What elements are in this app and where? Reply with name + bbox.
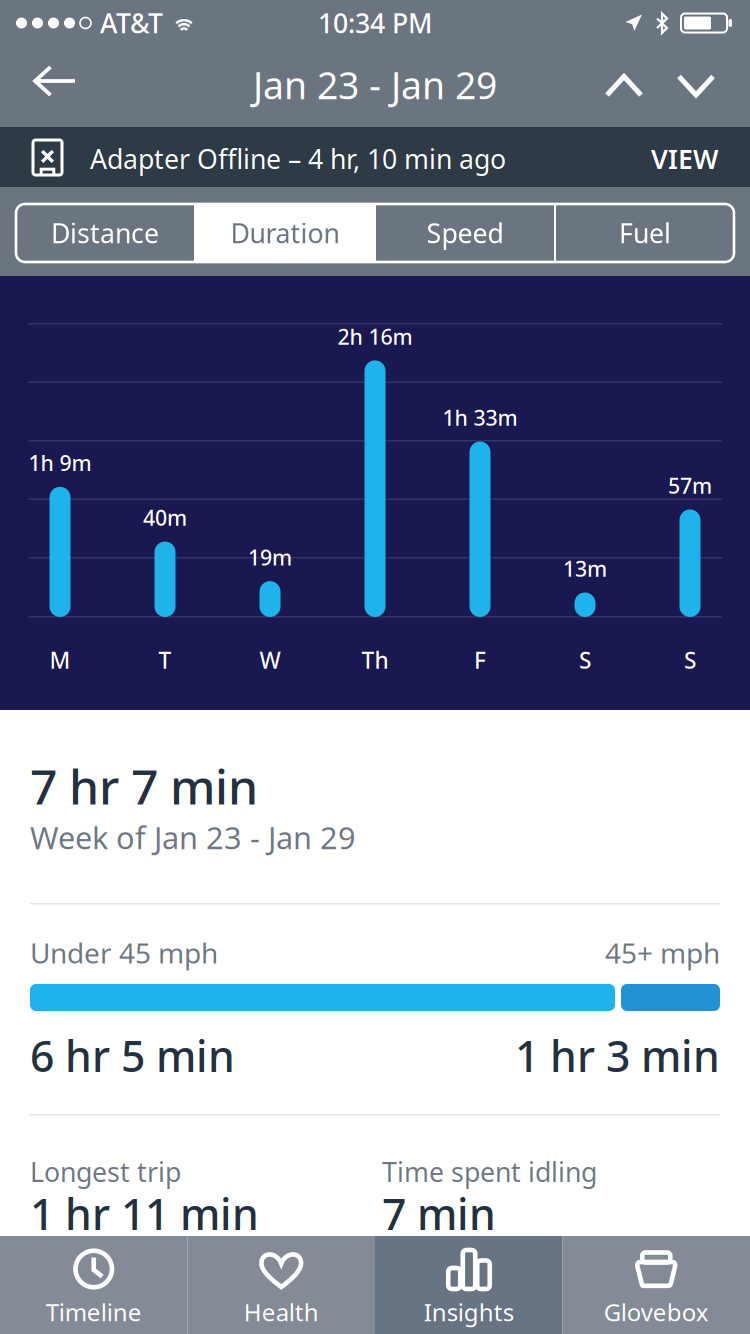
staticText: T xyxy=(158,645,171,675)
staticText: S xyxy=(579,645,591,675)
staticText: 45+ mph xyxy=(605,934,720,971)
button[interactable]: Speed xyxy=(376,204,554,262)
staticText: 7 hr 7 min xyxy=(30,754,258,818)
staticText: Jan 23 - Jan 29 xyxy=(253,60,497,110)
button[interactable]: Duration xyxy=(196,204,374,262)
button[interactable]: Next week xyxy=(663,55,729,117)
staticText: 13m xyxy=(563,554,607,583)
staticText: Speed xyxy=(426,215,503,251)
staticText: Glovebox xyxy=(604,1296,709,1328)
button[interactable]: Health xyxy=(187,1236,375,1334)
staticText: 1h 9m xyxy=(28,449,91,477)
staticText: 10:34 PM xyxy=(318,5,432,41)
staticText: 1h 33m xyxy=(442,403,517,432)
staticText: Week of Jan 23 - Jan 29 xyxy=(30,817,356,858)
staticText: Time spent idling xyxy=(382,1154,597,1189)
staticText: W xyxy=(259,645,280,675)
button[interactable]: Back xyxy=(17,50,93,112)
staticText: Th xyxy=(361,645,388,675)
button[interactable]: Timeline xyxy=(0,1236,187,1334)
staticText: F xyxy=(474,645,486,675)
staticText: 57m xyxy=(668,471,712,500)
staticText: AT&T xyxy=(100,5,163,41)
button[interactable]: Adapter Offline – 4 hr, 10 min ago xyxy=(0,127,750,187)
staticText: Distance xyxy=(51,215,159,251)
button[interactable]: Fuel xyxy=(556,204,734,262)
staticText: 1 hr 3 min xyxy=(515,1027,720,1084)
staticText: M xyxy=(49,645,70,675)
staticText: Timeline xyxy=(46,1296,142,1328)
staticText: Longest trip xyxy=(30,1154,181,1189)
staticText: Health xyxy=(244,1296,319,1328)
staticText: 7 min xyxy=(382,1185,496,1242)
button[interactable]: Glovebox xyxy=(562,1236,750,1334)
staticText: Fuel xyxy=(619,215,671,251)
staticText: Insights xyxy=(424,1296,514,1328)
staticText: Under 45 mph xyxy=(30,934,218,971)
staticText: 2h 16m xyxy=(337,322,412,350)
staticText: 19m xyxy=(248,543,292,571)
button[interactable]: Insights xyxy=(375,1236,562,1334)
staticText: Duration xyxy=(230,215,339,251)
staticText: S xyxy=(684,645,696,675)
button[interactable]: Distance xyxy=(16,204,194,262)
staticText: 1 hr 11 min xyxy=(30,1185,259,1242)
staticText: Adapter Offline – 4 hr, 10 min ago xyxy=(90,141,506,176)
staticText: VIEW xyxy=(651,141,718,176)
staticText: 40m xyxy=(143,503,187,532)
button[interactable]: Previous week xyxy=(591,55,657,117)
staticText: 6 hr 5 min xyxy=(30,1027,235,1084)
